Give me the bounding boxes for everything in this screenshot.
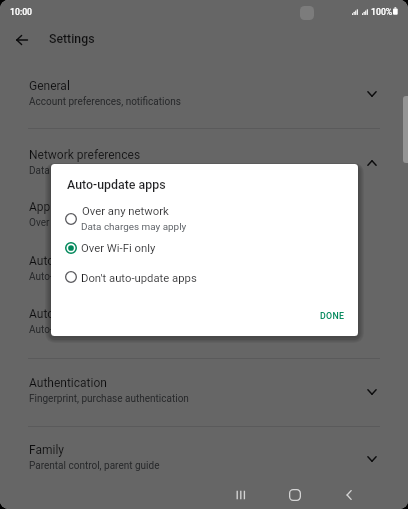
staticText: 10:00 [10,7,33,17]
staticText: Auto-play videos [29,307,117,321]
staticText: Auto-update apps [29,254,124,268]
staticText: Don't auto-update apps [81,272,197,285]
staticText: Parental control, parent guide [29,460,160,472]
staticText: Auto-update apps over Wi-Fi only [29,271,175,283]
button[interactable]: Home [280,480,310,509]
staticText: App download preference [29,200,166,214]
button[interactable] [0,365,408,410]
button[interactable]: Navigate up [8,26,36,54]
button[interactable]: Recent apps [226,480,256,509]
button[interactable] [0,136,408,181]
button[interactable] [0,432,408,477]
button[interactable] [51,205,358,235]
button[interactable] [0,67,408,112]
staticText: Settings [49,32,95,46]
staticText: Authentication [29,376,107,390]
staticText: Family [29,443,64,457]
button[interactable] [312,307,350,332]
staticText: Over any network [29,217,106,229]
staticText: Auto-update apps [67,177,166,192]
staticText: Data usage and Wi-Fi [29,165,123,177]
staticText: Fingerprint, purchase authentication [29,393,189,405]
staticText: Data charges may apply [81,221,187,233]
button[interactable] [0,242,408,287]
staticText: 100% [371,7,393,17]
button[interactable] [0,295,408,340]
staticText: Network preferences [29,148,141,162]
staticText: Auto-play videos over Wi-Fi only [29,324,170,336]
staticText: Over any network [82,205,169,218]
staticText: Over Wi-Fi only [81,242,156,255]
button[interactable]: Back [334,480,364,509]
button[interactable] [51,238,358,262]
staticText: Account preferences, notifications [29,96,181,108]
staticText: General [29,79,70,93]
button[interactable] [51,266,358,290]
staticText: DONE [320,311,345,321]
button[interactable] [0,189,408,234]
